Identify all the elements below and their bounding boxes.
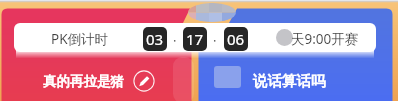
staticText: 06 xyxy=(227,29,245,49)
staticText: 17 xyxy=(186,29,204,49)
button[interactable]: 说话算话吗 xyxy=(253,69,326,93)
staticText: 天9:00开赛 xyxy=(291,30,359,48)
staticText: 真的再拉是猪 xyxy=(43,73,124,90)
staticText: : xyxy=(173,33,177,45)
button[interactable]: 真的再拉是猪 xyxy=(43,69,155,93)
staticText: : xyxy=(213,33,217,45)
staticText: 03 xyxy=(146,29,164,49)
staticText: PK倒计时 xyxy=(51,30,109,48)
staticText: 说话算话吗 xyxy=(253,72,326,90)
other: Edit nickname xyxy=(133,70,155,92)
